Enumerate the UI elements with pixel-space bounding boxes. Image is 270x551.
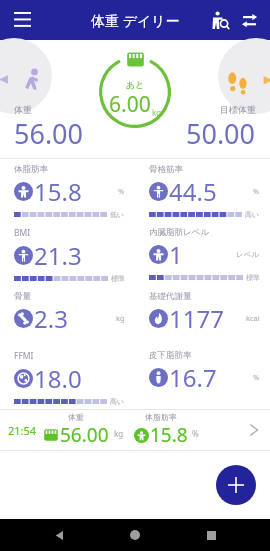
staticText: 骨格筋率 — [149, 164, 183, 175]
button[interactable]: 骨格筋率 — [135, 159, 270, 222]
staticText: 56.00 — [14, 115, 84, 152]
staticText: 皮下脂肪率 — [149, 350, 192, 361]
staticText: 1177 — [169, 302, 224, 335]
button[interactable]: 21:54 — [0, 410, 270, 450]
staticText: 基礎代謝量 — [149, 291, 192, 302]
staticText: 21:54 — [8, 423, 37, 438]
button[interactable]: Next: steps — [218, 38, 270, 114]
staticText: 15.8 — [34, 175, 82, 208]
staticText: % — [192, 428, 199, 439]
button[interactable]: FFMI — [0, 345, 135, 409]
staticText: 体脂肪率 — [14, 164, 48, 175]
staticText: 6.00 — [109, 90, 151, 119]
staticText: 56.00 — [60, 422, 109, 448]
staticText: kg — [152, 107, 162, 118]
staticText: kg — [116, 313, 125, 323]
button[interactable]: 体脂肪率 — [0, 159, 135, 222]
staticText: 高い — [245, 210, 260, 219]
button[interactable]: 内臓脂肪レベル — [135, 222, 270, 285]
staticText: % — [253, 186, 260, 196]
staticText: 体重 デイリー — [91, 11, 180, 30]
button[interactable]: Recent apps — [194, 519, 228, 551]
staticText: 2.3 — [34, 302, 68, 335]
staticText: 1 — [169, 238, 183, 271]
button[interactable]: 基礎代謝量 — [135, 286, 270, 345]
staticText: 体重 — [68, 412, 84, 422]
staticText: 15.8 — [150, 422, 188, 448]
staticText: FFMI — [14, 350, 34, 362]
staticText: 体脂肪率 — [145, 412, 177, 422]
staticText: 目標体重 — [220, 104, 256, 115]
button[interactable]: Previous: activity — [0, 38, 52, 114]
staticText: 骨量 — [14, 291, 31, 302]
staticText: 高い — [110, 397, 125, 406]
staticText: 内臓脂肪レベル — [149, 227, 210, 238]
staticText: % — [253, 372, 260, 382]
staticText: 標準 — [111, 274, 125, 283]
staticText: 低い — [110, 210, 125, 219]
button[interactable]: 皮下脂肪率 — [135, 345, 270, 404]
staticText: 21.3 — [34, 239, 82, 272]
staticText: 18.0 — [34, 362, 82, 395]
staticText: 体重 — [14, 104, 32, 115]
staticText: 標準 — [246, 273, 260, 282]
staticText: BMI — [14, 227, 31, 239]
button[interactable]: BMI — [0, 222, 135, 286]
staticText: 44.5 — [169, 175, 217, 208]
button[interactable]: Add entry — [216, 465, 256, 505]
staticText: レベル — [236, 250, 260, 259]
button[interactable]: Home — [118, 519, 152, 551]
button[interactable]: Menu — [8, 6, 36, 34]
staticText: 16.7 — [169, 361, 217, 394]
button[interactable]: Sync — [234, 5, 264, 35]
button[interactable]: Search person — [204, 5, 234, 35]
staticText: 50.00 — [186, 115, 256, 152]
button[interactable]: Back — [42, 519, 76, 551]
staticText: あと — [126, 79, 145, 90]
button[interactable]: 骨量 — [0, 286, 135, 345]
staticText: kg — [114, 428, 124, 439]
staticText: % — [118, 186, 125, 196]
staticText: kcal — [246, 313, 260, 323]
